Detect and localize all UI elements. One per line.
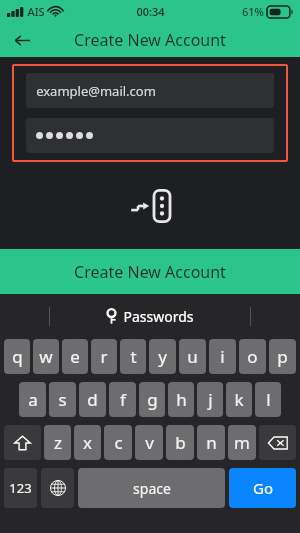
button[interactable]: n <box>197 425 225 460</box>
staticText: space <box>133 479 171 498</box>
button[interactable]: k <box>226 382 252 417</box>
button[interactable] <box>26 118 274 153</box>
button[interactable]: Passwords <box>106 307 194 326</box>
staticText: Create New Account <box>74 29 226 51</box>
button[interactable]: Create New Account <box>0 249 300 294</box>
button[interactable]: z <box>44 425 71 460</box>
staticText: f <box>120 388 126 411</box>
button[interactable]: Back <box>8 26 36 54</box>
button[interactable]: Go <box>229 468 296 508</box>
button[interactable]: Change keyboard language <box>41 468 74 508</box>
staticText: o <box>247 345 258 368</box>
button[interactable]: v <box>135 425 163 460</box>
button[interactable]: 123 <box>4 468 37 508</box>
staticText: u <box>187 345 198 368</box>
staticText: y <box>158 345 167 368</box>
button[interactable]: c <box>104 425 132 460</box>
button[interactable]: m <box>228 425 256 460</box>
staticText: 00:34 <box>136 4 165 19</box>
staticText: h <box>176 388 187 411</box>
staticText: q <box>12 345 23 368</box>
button[interactable]: d <box>79 382 106 417</box>
staticText: Passwords <box>123 307 194 326</box>
button[interactable]: example@mail.com <box>26 73 274 108</box>
staticText: m <box>234 431 250 454</box>
button[interactable]: h <box>168 382 194 417</box>
staticText: k <box>234 388 244 411</box>
button[interactable]: r <box>91 339 117 374</box>
button[interactable]: o <box>239 339 266 374</box>
staticText: g <box>147 388 158 411</box>
button[interactable]: l <box>255 382 281 417</box>
staticText: e <box>70 345 80 368</box>
staticText: t <box>130 345 137 368</box>
button[interactable]: s <box>49 382 76 417</box>
button[interactable]: g <box>139 382 165 417</box>
staticText: s <box>58 388 67 411</box>
button[interactable]: i <box>209 339 236 374</box>
staticText: Create New Account <box>74 261 226 283</box>
staticText: AIS <box>27 4 45 19</box>
button[interactable]: f <box>109 382 136 417</box>
button[interactable]: y <box>149 339 176 374</box>
staticText: c <box>114 431 123 454</box>
button[interactable]: j <box>197 382 223 417</box>
staticText: d <box>87 388 98 411</box>
staticText: p <box>277 345 288 368</box>
button[interactable]: t <box>120 339 146 374</box>
button[interactable]: a <box>19 382 46 417</box>
staticText: example@mail.com <box>36 82 156 100</box>
staticText: b <box>175 431 186 454</box>
staticText: z <box>54 431 62 454</box>
staticText: v <box>145 431 154 454</box>
staticText: j <box>208 388 213 411</box>
button[interactable]: x <box>74 425 101 460</box>
button[interactable]: b <box>166 425 194 460</box>
button[interactable]: w <box>33 339 59 374</box>
staticText: 123 <box>9 479 32 497</box>
staticText: i <box>220 345 225 368</box>
button[interactable]: e <box>62 339 88 374</box>
staticText: r <box>100 345 108 368</box>
button[interactable]: p <box>269 339 296 374</box>
button[interactable]: Shift <box>4 425 41 460</box>
staticText: w <box>39 345 53 368</box>
staticText: a <box>28 388 38 411</box>
button[interactable]: Backspace <box>259 425 296 460</box>
button[interactable]: space <box>78 468 225 508</box>
staticText: n <box>206 431 217 454</box>
staticText: 61% <box>242 4 264 19</box>
staticText: Go <box>253 478 273 498</box>
button[interactable]: u <box>179 339 206 374</box>
staticText: l <box>266 388 271 411</box>
button[interactable]: q <box>4 339 30 374</box>
staticText: x <box>83 431 92 454</box>
